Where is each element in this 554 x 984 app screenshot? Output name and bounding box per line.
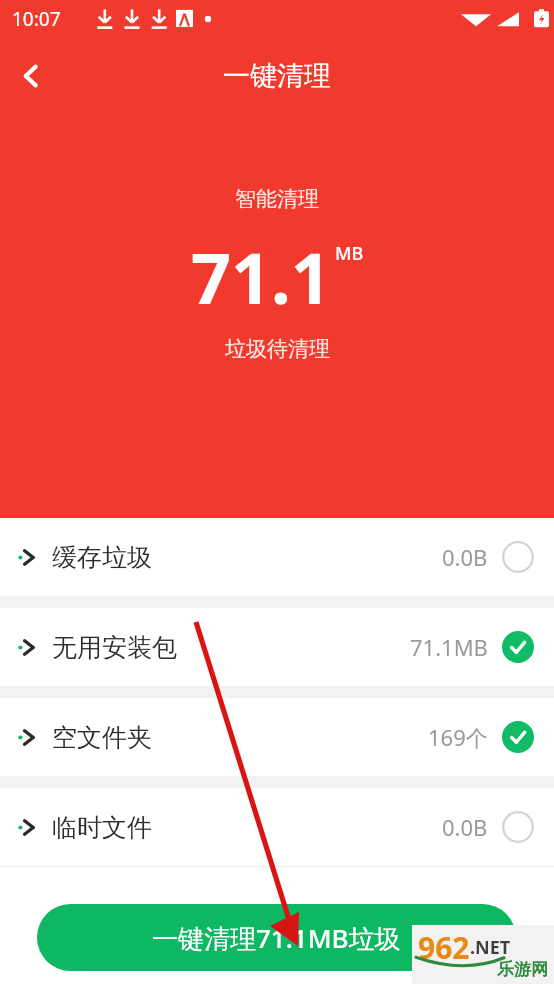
staticText: 空文件夹 <box>52 722 152 753</box>
button[interactable]: 临时文件 <box>0 788 554 866</box>
staticText: 一键清理 <box>223 59 331 93</box>
button[interactable]: 无用安装包 <box>0 608 554 686</box>
button[interactable]: Not selected 临时文件 <box>502 811 534 843</box>
staticText: 智能清理 <box>235 186 319 212</box>
staticText: .NET <box>470 935 511 960</box>
staticText: 乐游网 <box>497 959 548 980</box>
button[interactable]: 空文件夹 <box>0 698 554 776</box>
button[interactable]: Selected 无用安装包 <box>502 631 534 663</box>
staticText: 无用安装包 <box>52 632 177 663</box>
button[interactable]: Not selected 缓存垃圾 <box>502 541 534 573</box>
staticText: 71.1 <box>191 229 331 324</box>
staticText: MB <box>335 241 364 266</box>
staticText: 10:07 <box>12 6 61 32</box>
button[interactable]: Selected 空文件夹 <box>502 721 534 753</box>
staticText: 缓存垃圾 <box>52 542 152 573</box>
staticText: 临时文件 <box>52 812 152 843</box>
button[interactable]: Back <box>0 45 62 107</box>
staticText: 垃圾待清理 <box>225 336 330 362</box>
button[interactable]: 缓存垃圾 <box>0 518 554 596</box>
staticText: 0.0B <box>442 542 488 572</box>
staticText: 一键清理71.1MB垃圾 <box>152 920 401 956</box>
button[interactable]: 一键清理71.1MB垃圾 <box>37 904 516 971</box>
staticText: 0.0B <box>442 812 488 842</box>
staticText: 169个 <box>428 722 488 752</box>
staticText: 71.1MB <box>410 632 488 662</box>
staticText: 962 <box>418 927 470 968</box>
